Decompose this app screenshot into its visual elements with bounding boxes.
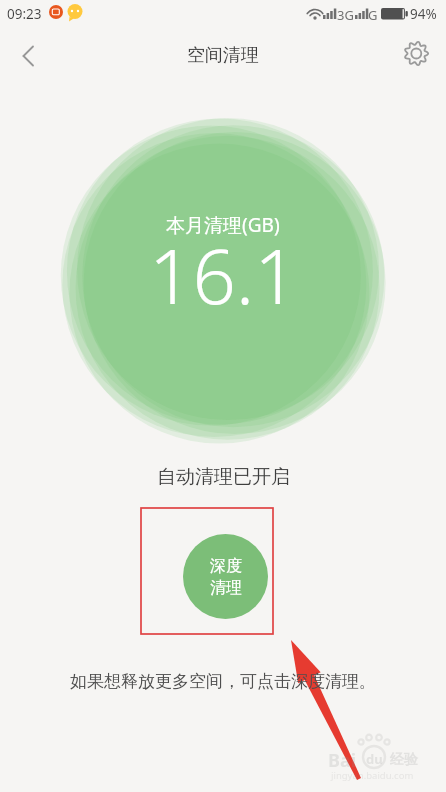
staticText: 3G: [337, 6, 354, 24]
staticText: 自动清理已开启: [157, 465, 290, 489]
staticText: du: [366, 750, 383, 768]
button[interactable]: 深度 清理: [183, 534, 268, 619]
staticText: 如果想释放更多空间，可点击深度清理。: [70, 671, 376, 692]
staticText: 本月清理(GB): [166, 212, 280, 238]
staticText: 09:23: [7, 5, 42, 23]
staticText: 空间清理: [187, 44, 259, 67]
staticText: 深度 清理: [210, 556, 242, 597]
staticText: 经验: [390, 751, 418, 769]
staticText: G: [368, 6, 378, 24]
button[interactable]: [10, 40, 46, 76]
staticText: jingyan.baidu.com: [331, 769, 414, 782]
staticText: 16.1: [149, 223, 298, 327]
staticText: Bai: [328, 748, 357, 773]
staticText: 94%: [410, 5, 437, 23]
button[interactable]: [398, 38, 434, 74]
